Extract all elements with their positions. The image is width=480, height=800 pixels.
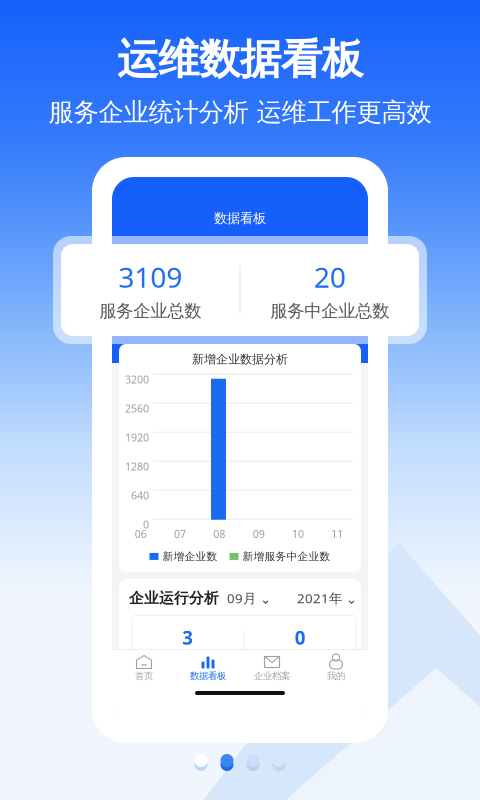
staticText: 新增服务中企业数 (242, 550, 330, 563)
staticText: 3109 (118, 258, 182, 295)
staticText: 数据看板 (190, 670, 226, 682)
staticText: 1920 (125, 430, 149, 444)
staticText: 11 (331, 527, 343, 541)
staticText: 服务企业总数 (99, 300, 201, 322)
button[interactable]: 首页 (112, 655, 176, 681)
staticText: 3200 (125, 372, 149, 386)
staticText: 06 (135, 527, 147, 541)
staticText: 0 (295, 625, 306, 650)
staticText: 09 (253, 527, 265, 541)
staticText: 09月 ⌄ (227, 589, 271, 607)
staticText: 07 (174, 527, 186, 541)
staticText: 数据看板 (214, 210, 266, 226)
staticText: 首页 (135, 670, 153, 682)
staticText: 2021年 ⌄ (297, 589, 357, 607)
staticText: 企业档案 (254, 670, 290, 682)
staticText: 服务企业统计分析 运维工作更高效 (48, 97, 431, 128)
button[interactable]: 09月 ⌄ (227, 589, 271, 607)
button[interactable]: 企业档案 (240, 655, 304, 681)
staticText: 3 (182, 625, 193, 650)
staticText: 运维数据看板 (117, 34, 363, 85)
button[interactable]: 2021年 ⌄ (297, 589, 357, 607)
staticText: 640 (131, 488, 149, 502)
staticText: 新增企业数 (162, 550, 217, 563)
staticText: 新增客户 (166, 653, 210, 666)
staticText: 1280 (125, 459, 149, 473)
button[interactable]: 数据看板 (176, 655, 240, 681)
staticText: 新增企业数据分析 (192, 352, 288, 367)
staticText: 2560 (125, 401, 149, 415)
staticText: 08 (213, 527, 225, 541)
staticText: 我的 (327, 670, 345, 682)
staticText: 10 (292, 527, 304, 541)
staticText: 0 (143, 517, 149, 531)
button[interactable]: 我的 (304, 655, 368, 681)
staticText: 企业运行分析 (129, 589, 219, 607)
staticText: 20 (314, 258, 346, 295)
staticText: 服务中企业总数 (270, 300, 389, 322)
staticText: 失效轮最 (278, 653, 322, 666)
